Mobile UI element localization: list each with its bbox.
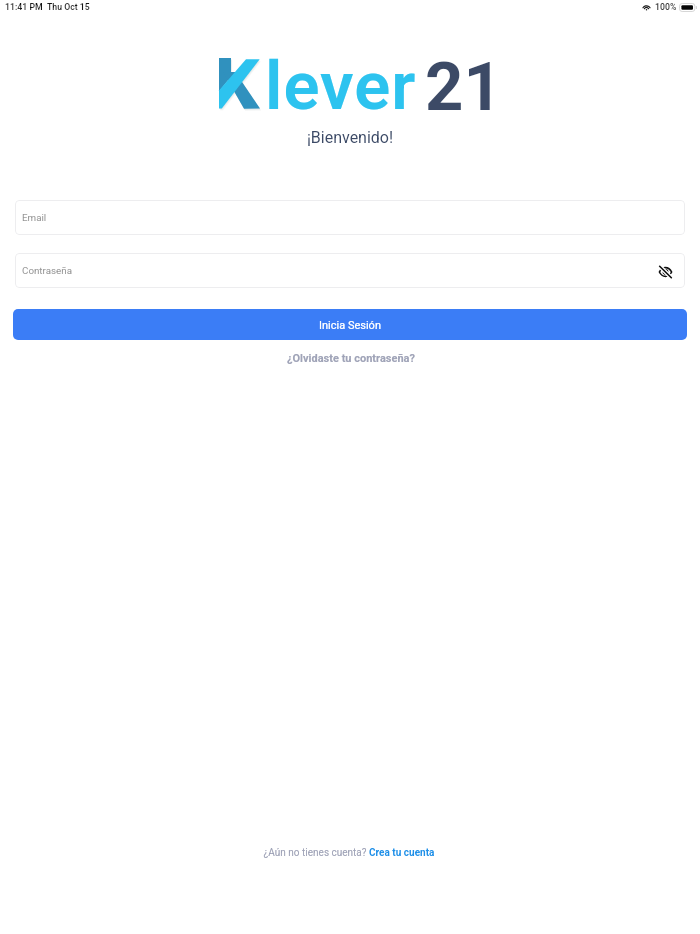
staticText: ¡Bienvenido! <box>0 128 700 147</box>
staticText: Email <box>22 212 47 223</box>
button[interactable]: Mostrar contraseña <box>656 263 674 281</box>
other: Batería 100% <box>679 3 697 12</box>
staticText: Inicia Sesión <box>319 319 381 332</box>
button[interactable]: Inicia Sesión <box>13 309 687 340</box>
button[interactable]: Email <box>15 200 685 235</box>
staticText: 100% <box>655 2 677 12</box>
staticText: Thu Oct 15 <box>47 2 90 12</box>
button[interactable]: Contraseña <box>15 253 685 288</box>
staticText: 21 <box>425 48 502 118</box>
staticText: lever <box>265 47 417 117</box>
staticText: Contraseña <box>22 265 73 276</box>
staticText: 11:41 PM <box>5 2 43 12</box>
button[interactable]: ¿Aún no tienes cuenta? Crea tu cuenta <box>0 847 699 859</box>
other: Wi-Fi <box>642 3 651 11</box>
button[interactable]: ¿Olvidaste tu contraseña? <box>1 352 700 365</box>
